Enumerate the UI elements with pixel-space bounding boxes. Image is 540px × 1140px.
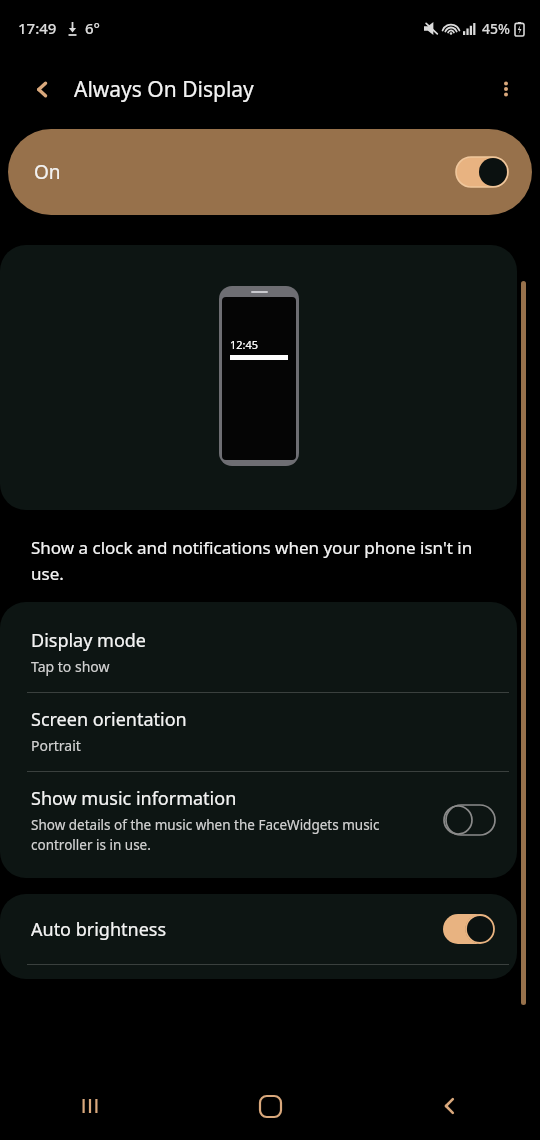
button[interactable]: Show music information — [0, 772, 517, 872]
button[interactable]: Back — [360, 1072, 540, 1140]
staticText: Always On Display — [74, 75, 254, 104]
button[interactable]: Display mode — [0, 614, 517, 692]
staticText: Show music information — [31, 786, 237, 811]
staticText: Auto brightness — [31, 917, 443, 942]
staticText: Show details of the music when the FaceW… — [31, 816, 431, 854]
button[interactable]: Screen orientation — [0, 693, 517, 771]
staticText: 6° — [85, 18, 100, 38]
staticText: Tap to show — [31, 657, 110, 676]
staticText: On — [34, 159, 61, 185]
staticText: 17:49 — [18, 18, 57, 38]
button[interactable]: Auto brightness — [0, 894, 517, 964]
button[interactable]: Home — [180, 1072, 360, 1140]
button[interactable]: Recents — [0, 1072, 180, 1140]
staticText: Display mode — [31, 628, 147, 653]
staticText: Screen orientation — [31, 707, 187, 732]
staticText: Show a clock and notifications when your… — [31, 536, 492, 585]
button[interactable]: Back — [18, 65, 66, 113]
staticText: 12:45 — [230, 337, 259, 352]
button[interactable]: More options — [482, 65, 530, 113]
staticText: 45% — [482, 19, 510, 38]
staticText: Portrait — [31, 736, 81, 755]
button[interactable]: On — [8, 129, 532, 215]
